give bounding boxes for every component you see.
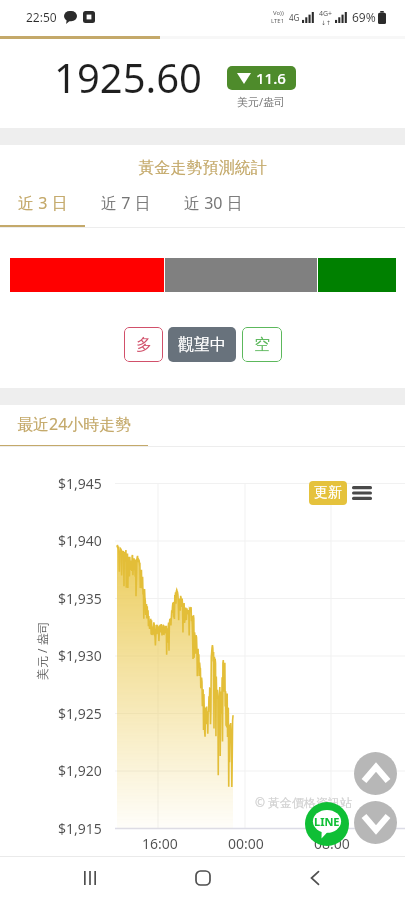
staticText: $1,925 — [58, 704, 102, 723]
staticText: 1925.60 — [54, 50, 202, 104]
staticText: $1,935 — [58, 589, 102, 608]
staticText: © 黃金價格資訊站 — [255, 794, 353, 810]
button[interactable]: 空 — [242, 327, 282, 362]
staticText: ↓↑ — [321, 19, 332, 26]
staticText: 多 — [136, 335, 152, 355]
staticText: 4G+ — [319, 9, 333, 19]
button[interactable]: 多 — [124, 327, 163, 362]
button[interactable]: Scroll to bottom — [354, 801, 397, 844]
button[interactable]: 近 3 日 — [0, 192, 85, 227]
button[interactable]: 觀望中 — [168, 327, 236, 362]
staticText: $1,940 — [58, 531, 102, 550]
button[interactable]: Scroll to top — [354, 752, 397, 795]
staticText: 近 7 日 — [101, 192, 151, 214]
staticText: 觀望中 — [178, 335, 226, 355]
staticText: 最近24小時走勢 — [17, 413, 132, 435]
staticText: 00:00 — [228, 834, 264, 853]
staticText: 空 — [254, 335, 270, 355]
staticText: 更新 — [314, 484, 342, 502]
staticText: 近 30 日 — [184, 192, 243, 214]
staticText: $1,915 — [58, 819, 102, 838]
staticText: 16:00 — [142, 834, 178, 853]
staticText: $1,920 — [58, 761, 102, 780]
staticText: 美元/盎司 — [237, 94, 286, 109]
button[interactable]: 近 30 日 — [167, 192, 259, 227]
staticText: 黃金走勢預測統計 — [0, 158, 405, 178]
button[interactable]: 11.6 — [227, 66, 296, 90]
staticText: 69% — [352, 9, 376, 25]
button[interactable]: Back — [293, 856, 337, 900]
button[interactable]: Recent apps — [68, 856, 112, 900]
staticText: $1,930 — [58, 646, 102, 665]
staticText: 近 3 日 — [18, 192, 68, 214]
staticText: 4G — [289, 12, 300, 23]
staticText: 11.6 — [256, 68, 286, 88]
staticText: 08:00 — [314, 834, 350, 853]
button[interactable]: 更新 — [309, 481, 347, 505]
staticText: LINE — [314, 814, 340, 829]
staticText: $1,945 — [58, 474, 102, 493]
button[interactable]: Home — [181, 856, 225, 900]
button[interactable]: 近 7 日 — [85, 192, 167, 227]
staticText: 22:50 — [26, 9, 57, 25]
staticText: 美元 / 盎司 — [34, 621, 50, 680]
button[interactable]: LINE — [305, 802, 349, 846]
staticText: Vo)) — [273, 9, 284, 17]
button[interactable]: Menu — [352, 486, 372, 500]
staticText: LTE1 — [271, 17, 285, 25]
